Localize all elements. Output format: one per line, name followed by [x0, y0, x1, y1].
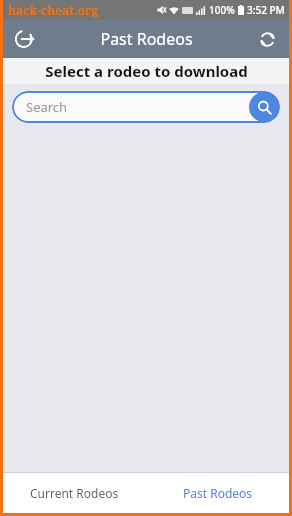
staticText: hack-cheat.org [8, 2, 99, 18]
staticText: Past Rodeos [100, 28, 193, 50]
staticText: Search [26, 98, 249, 116]
button[interactable]: Search [12, 91, 280, 123]
button[interactable]: Current Rodeos [3, 473, 146, 513]
staticText: Current Rodeos [30, 485, 119, 501]
staticText: Past Rodeos [183, 485, 253, 501]
button[interactable]: Search [249, 92, 279, 122]
button[interactable]: Refresh [251, 23, 283, 55]
staticText: 100% [209, 3, 235, 17]
button[interactable]: Log out [9, 23, 41, 55]
staticText: Select a rodeo to download [45, 61, 248, 81]
staticText: 3:52 PM [247, 3, 285, 17]
button[interactable]: Past Rodeos [146, 473, 289, 513]
